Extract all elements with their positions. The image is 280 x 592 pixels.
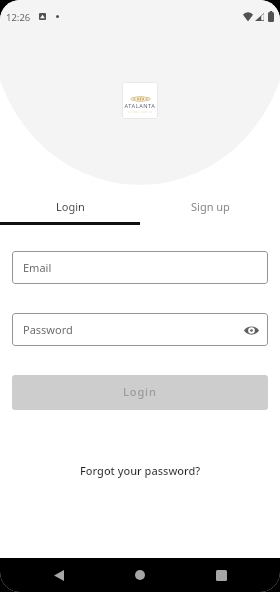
staticText: ATALANTA bbox=[122, 102, 158, 110]
staticText: Forgot your password? bbox=[80, 463, 201, 478]
button[interactable]: Back bbox=[40, 558, 78, 592]
button[interactable]: Email bbox=[12, 251, 268, 284]
staticText: Sign up bbox=[191, 199, 230, 214]
button[interactable]: Login bbox=[12, 375, 268, 410]
staticText: Email bbox=[23, 260, 52, 275]
button[interactable]: Forgot your password? bbox=[70, 461, 211, 480]
button[interactable]: Show password bbox=[243, 322, 259, 338]
button[interactable]: Password bbox=[12, 313, 268, 346]
staticText: Login bbox=[123, 384, 157, 399]
staticText: Password bbox=[23, 322, 73, 337]
button[interactable]: Sign up bbox=[140, 196, 280, 222]
button[interactable]: Login bbox=[0, 196, 140, 222]
staticText: 12:26 bbox=[6, 11, 31, 24]
button[interactable]: Recent apps bbox=[202, 558, 240, 592]
staticText: Login bbox=[56, 199, 85, 214]
button[interactable]: Home bbox=[121, 558, 159, 592]
